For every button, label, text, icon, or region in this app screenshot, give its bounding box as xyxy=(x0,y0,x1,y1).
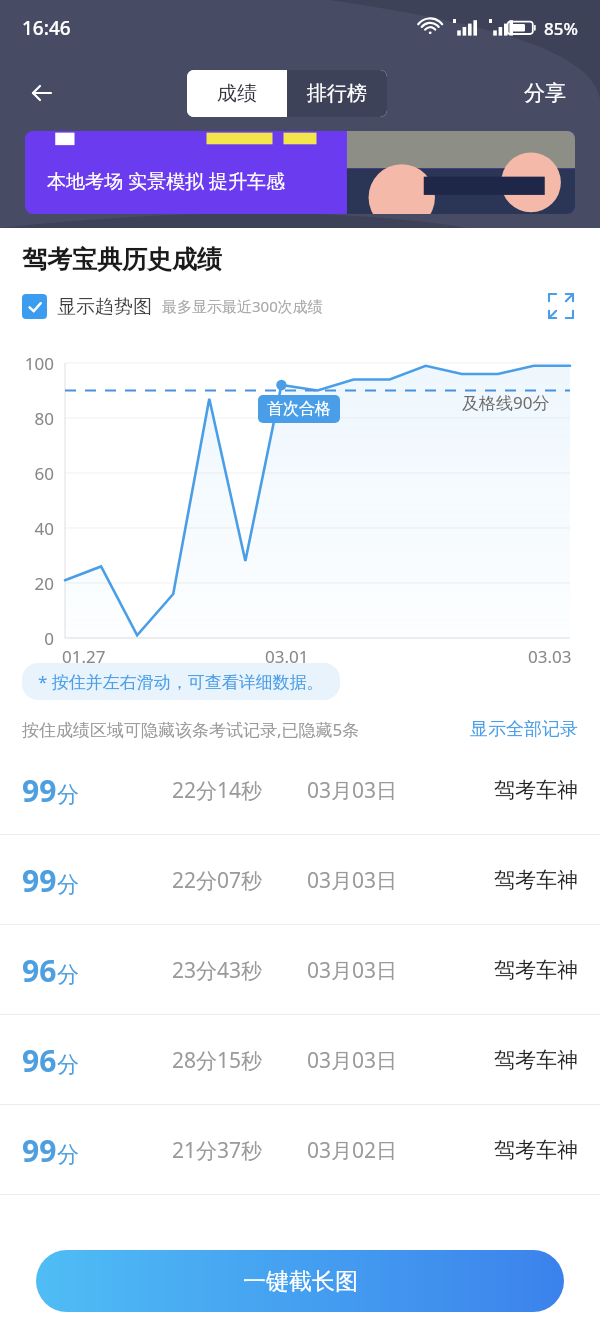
button[interactable]: 成绩 xyxy=(187,70,287,117)
staticText: 驾考车神 xyxy=(494,1047,578,1073)
staticText: 驾考车神 xyxy=(494,1137,578,1163)
staticText: 一键截长图 xyxy=(243,1267,358,1296)
staticText: 分 xyxy=(57,871,79,899)
staticText: 99 xyxy=(22,1130,57,1171)
staticText: 首次合格 xyxy=(267,399,331,419)
staticText: 显示全部记录 xyxy=(470,718,578,741)
staticText: 0 xyxy=(2,627,54,650)
staticText: 22分07秒 xyxy=(172,866,307,895)
staticText: 23分43秒 xyxy=(172,956,307,985)
staticText: 21分37秒 xyxy=(172,1136,307,1165)
button[interactable]: 显示全部记录 xyxy=(470,718,578,741)
staticText: 60 xyxy=(2,462,54,485)
button[interactable]: 显示趋势图 xyxy=(22,294,152,319)
button[interactable]: 99 xyxy=(0,1105,600,1195)
staticText: 分 xyxy=(57,961,79,989)
staticText: 成绩 xyxy=(217,81,257,106)
staticText: 分 xyxy=(57,1051,79,1079)
staticText: 96 xyxy=(22,950,57,991)
staticText: 驾考车神 xyxy=(494,867,578,893)
button[interactable]: 本地考场 实景模拟 提升车感 xyxy=(25,131,575,214)
staticText: 99 xyxy=(22,770,57,811)
button[interactable]: 排行榜 xyxy=(287,70,387,117)
button[interactable]: 99 xyxy=(0,835,600,925)
staticText: 40 xyxy=(2,517,54,540)
staticText: 分享 xyxy=(524,80,566,106)
button[interactable]: 分享 xyxy=(490,62,600,124)
staticText: 80 xyxy=(2,407,54,430)
staticText: 驾考宝典历史成绩 xyxy=(22,244,222,275)
staticText: 按住成绩区域可隐藏该条考试记录,已隐藏5条 xyxy=(22,718,360,741)
button[interactable]: 96 xyxy=(0,1015,600,1105)
staticText: 28分15秒 xyxy=(172,1046,307,1075)
staticText: 分 xyxy=(57,781,79,809)
staticText: 03月03日 xyxy=(307,1046,442,1075)
staticText: 03.01 xyxy=(265,645,309,668)
button[interactable]: Fullscreen xyxy=(544,289,578,323)
staticText: 显示趋势图 xyxy=(57,295,152,319)
button[interactable]: Back xyxy=(0,62,84,124)
staticText: 最多显示最近300次成绩 xyxy=(162,296,323,316)
staticText: 22分14秒 xyxy=(172,776,307,805)
button[interactable]: 99 xyxy=(0,745,600,835)
staticText: 分 xyxy=(57,1141,79,1169)
staticText: 100 xyxy=(2,352,54,375)
staticText: 03月03日 xyxy=(307,866,442,895)
staticText: * 按住并左右滑动，可查看详细数据。 xyxy=(38,670,324,693)
staticText: 03月03日 xyxy=(307,956,442,985)
staticText: 01.27 xyxy=(62,645,106,668)
staticText: 16:46 xyxy=(22,15,71,41)
staticText: 03月03日 xyxy=(307,776,442,805)
staticText: 驾考车神 xyxy=(494,957,578,983)
staticText: 本地考场 实景模拟 提升车感 xyxy=(47,168,285,194)
staticText: 03月02日 xyxy=(307,1136,442,1165)
staticText: 03.03 xyxy=(528,645,572,668)
staticText: 排行榜 xyxy=(307,81,367,106)
staticText: 85% xyxy=(544,17,578,40)
button[interactable]: 一键截长图 xyxy=(36,1250,564,1312)
staticText: 99 xyxy=(22,860,57,901)
staticText: 及格线90分 xyxy=(462,391,550,414)
staticText: 驾考车神 xyxy=(494,777,578,803)
staticText: 96 xyxy=(22,1040,57,1081)
staticText: 20 xyxy=(2,572,54,595)
button[interactable]: 96 xyxy=(0,925,600,1015)
